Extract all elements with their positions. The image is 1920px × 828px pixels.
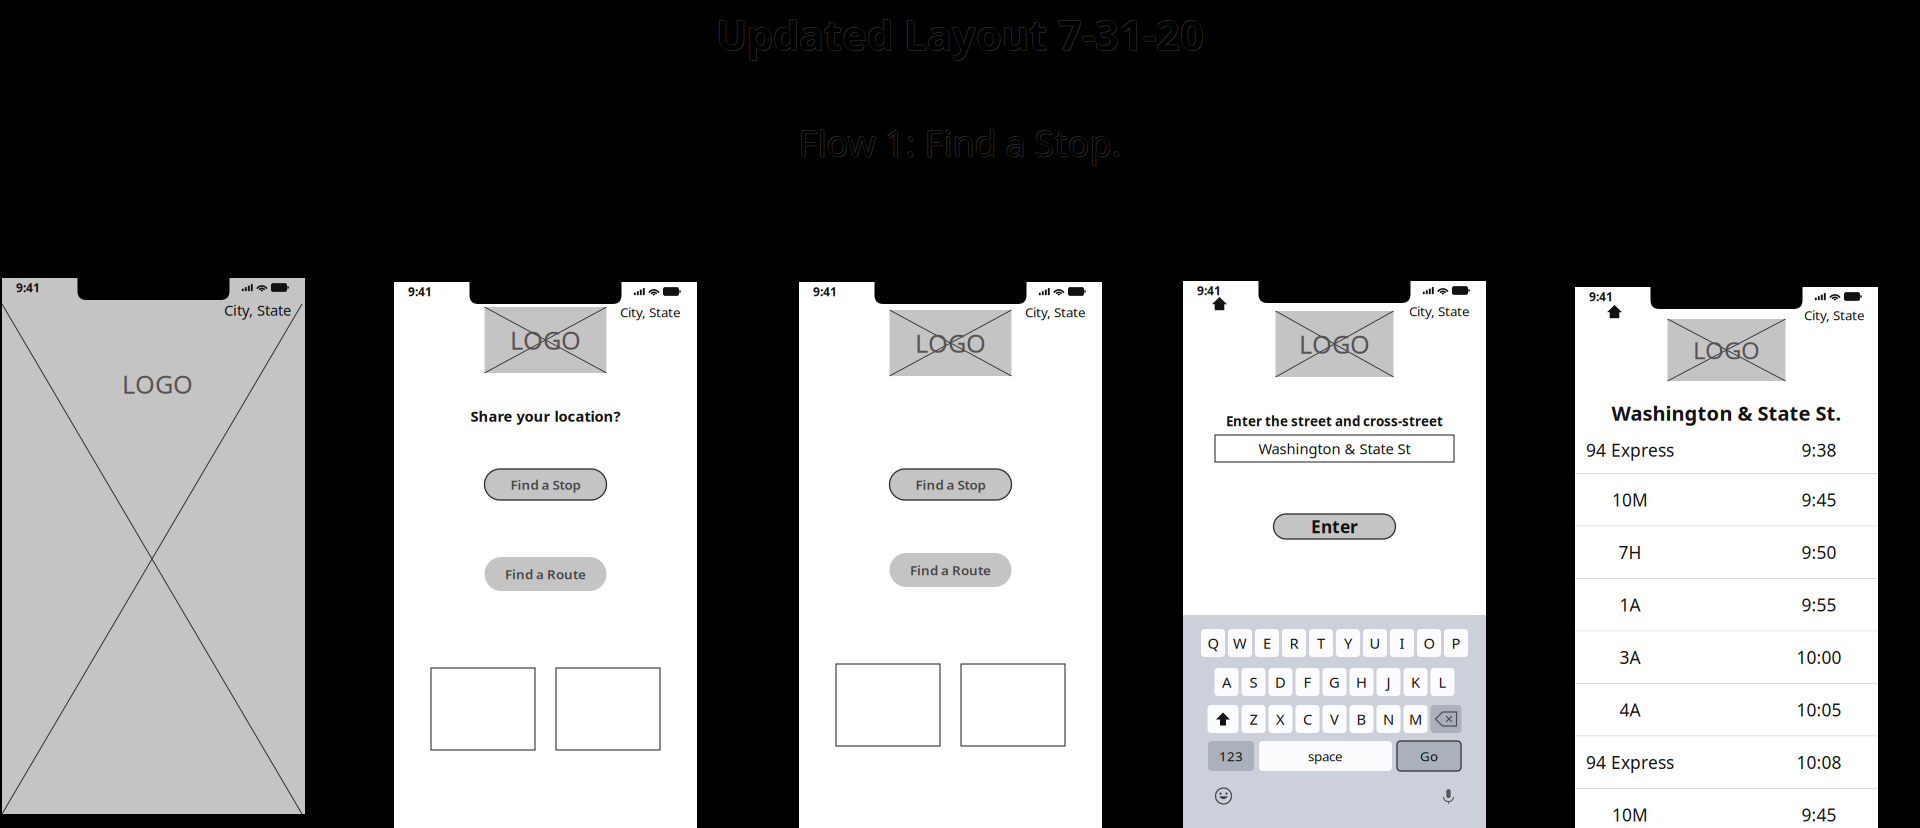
button[interactable]: Find a Route <box>484 557 606 591</box>
staticText: 123 <box>1219 747 1243 765</box>
staticText: Flow 1: Find a Stop. <box>798 118 1121 166</box>
staticText: 10:05 <box>1796 698 1841 721</box>
button[interactable]: E <box>1255 629 1279 657</box>
button[interactable]: Shift <box>1207 705 1238 733</box>
staticText: W <box>1233 633 1247 653</box>
button[interactable]: Emoji <box>1215 787 1232 804</box>
staticText: P <box>1451 633 1460 653</box>
button[interactable]: C <box>1295 705 1319 733</box>
staticText: 10M <box>1612 803 1648 826</box>
button[interactable]: X <box>1268 705 1292 733</box>
button[interactable]: N <box>1376 705 1400 733</box>
staticText: I <box>1399 633 1404 653</box>
button[interactable]: Home <box>1212 297 1227 310</box>
button[interactable]: 10M <box>1575 789 1878 828</box>
button[interactable]: V <box>1322 705 1346 733</box>
button[interactable]: Find a Stop <box>484 469 606 500</box>
staticText: U <box>1369 633 1380 653</box>
button[interactable]: M <box>1403 705 1427 733</box>
button[interactable]: Y <box>1336 629 1360 657</box>
staticText: A <box>1222 672 1231 692</box>
button[interactable]: 3A <box>1575 631 1878 683</box>
button[interactable]: B <box>1349 705 1373 733</box>
button[interactable]: T <box>1309 629 1333 657</box>
staticText: V <box>1330 709 1339 729</box>
button[interactable]: 1A <box>1575 579 1878 630</box>
staticText: L <box>1438 672 1446 692</box>
staticText: Go <box>1420 747 1438 765</box>
button[interactable]: Go <box>1397 741 1461 771</box>
staticText: M <box>1409 709 1422 729</box>
button[interactable]: 94 Express <box>1575 427 1878 473</box>
staticText: Find a Route <box>505 565 586 583</box>
staticText: LOGO <box>510 323 581 357</box>
staticText: 4A <box>1619 698 1640 721</box>
button[interactable]: 94 Express <box>1575 736 1878 788</box>
staticText: Updated Layout 7-31-20 <box>717 8 1205 62</box>
staticText: S <box>1249 672 1257 692</box>
button[interactable]: Dictation <box>1443 788 1454 804</box>
button[interactable]: Z <box>1241 705 1265 733</box>
button[interactable]: P <box>1444 629 1468 657</box>
staticText: Q <box>1207 633 1218 653</box>
button[interactable]: L <box>1430 668 1454 696</box>
staticText: 1A <box>1619 593 1640 616</box>
button[interactable]: Enter <box>1273 514 1395 539</box>
button[interactable]: Placeholder card 1 <box>836 664 940 746</box>
staticText: D <box>1275 672 1286 692</box>
staticText: 10:08 <box>1796 751 1841 774</box>
staticText: 9:41 <box>1589 288 1613 304</box>
button[interactable]: 7H <box>1575 526 1878 578</box>
staticText: 9:45 <box>1801 488 1836 511</box>
staticText: B <box>1356 709 1366 729</box>
button[interactable]: O <box>1417 629 1441 657</box>
staticText: 10:00 <box>1796 646 1841 669</box>
button[interactable]: 123 <box>1208 741 1254 771</box>
staticText: J <box>1386 672 1390 692</box>
button[interactable]: Placeholder card 2 <box>961 664 1065 746</box>
staticText: C <box>1303 709 1312 729</box>
button[interactable]: G <box>1322 668 1346 696</box>
button[interactable]: F <box>1295 668 1319 696</box>
button[interactable]: K <box>1403 668 1427 696</box>
staticText: K <box>1411 672 1420 692</box>
button[interactable]: Q <box>1201 629 1225 657</box>
button[interactable]: D <box>1268 668 1292 696</box>
staticText: Enter the street and cross-street <box>1226 412 1443 430</box>
staticText: O <box>1423 633 1434 653</box>
button[interactable]: H <box>1349 668 1373 696</box>
staticText: Updated Layout 7-31-20 <box>715 6 1203 61</box>
button[interactable]: 4A <box>1575 684 1878 735</box>
button[interactable]: Delete <box>1430 705 1461 733</box>
button[interactable]: Placeholder card 2 <box>556 668 660 750</box>
button[interactable]: Find a Stop <box>889 469 1011 500</box>
button[interactable]: R <box>1282 629 1306 657</box>
staticText: Updated Layout 7-31-20 <box>716 7 1204 62</box>
staticText: Flow 1: Find a Stop. <box>798 119 1121 167</box>
button[interactable]: J <box>1376 668 1400 696</box>
staticText: 9:41 <box>408 283 432 299</box>
button[interactable]: U <box>1363 629 1387 657</box>
staticText: X <box>1276 709 1285 729</box>
staticText: 9:38 <box>1801 438 1836 461</box>
button[interactable]: Home <box>1607 305 1622 318</box>
staticText: 9:55 <box>1801 593 1836 616</box>
staticText: City, State <box>620 303 681 321</box>
button[interactable]: Placeholder card 1 <box>431 668 535 750</box>
staticText: Flow 1: Find a Stop. <box>799 119 1122 167</box>
button[interactable]: A <box>1214 668 1238 696</box>
button[interactable]: 10M <box>1575 474 1878 525</box>
staticText: T <box>1317 633 1325 653</box>
staticText: 9:41 <box>813 283 837 299</box>
staticText: LOGO <box>915 326 986 360</box>
button[interactable]: W <box>1228 629 1252 657</box>
staticText: Y <box>1344 633 1352 653</box>
button[interactable]: space <box>1259 741 1392 771</box>
button[interactable]: I <box>1390 629 1414 657</box>
button[interactable]: S <box>1241 668 1265 696</box>
button[interactable]: Find a Route <box>889 553 1011 587</box>
